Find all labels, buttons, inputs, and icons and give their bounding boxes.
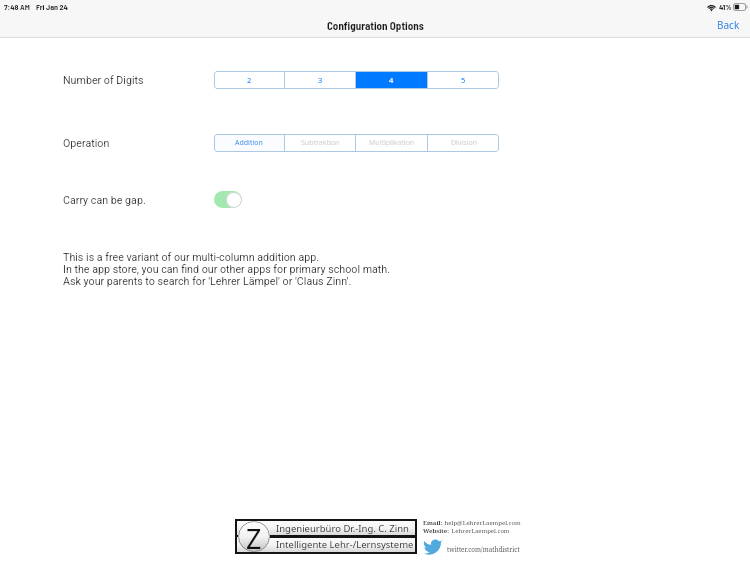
staticText: 2 (247, 75, 252, 85)
staticText: Number of Digits (63, 74, 144, 87)
staticText: Division (451, 138, 477, 148)
staticText: Addition (235, 138, 263, 148)
staticText: Configuration Options (327, 19, 424, 32)
staticText: twitter.com/mathdistrict (447, 545, 520, 554)
staticText: 3 (318, 75, 323, 85)
staticText: Carry can be gap. (63, 194, 146, 207)
staticText: Fri Jan 24 (36, 2, 68, 12)
staticText: 7:48 AM (4, 2, 30, 12)
staticText: Intelligente Lehr-/Lernsysteme (276, 538, 414, 551)
staticText: This is a free variant of our multi-colu… (63, 251, 391, 287)
staticText: Website: (423, 527, 450, 535)
button[interactable]: Back (707, 14, 750, 36)
button[interactable]: 3 (285, 71, 355, 89)
button[interactable]: 4 (356, 71, 427, 89)
staticText: Operation (63, 137, 110, 150)
button[interactable]: Carry can be gap toggle (214, 191, 242, 208)
button[interactable]: Division (428, 134, 499, 152)
staticText: Back (717, 18, 740, 32)
staticText: 5 (461, 75, 466, 85)
button[interactable]: Subtraktion (285, 134, 355, 152)
staticText: Multiplikation (369, 138, 415, 148)
staticText: Z (246, 521, 262, 551)
button[interactable]: 5 (428, 71, 499, 89)
staticText: 4 (389, 75, 394, 85)
button[interactable]: Multiplikation (356, 134, 427, 152)
staticText: LehrerLaempel.com (450, 527, 510, 535)
button[interactable]: 2 (214, 71, 284, 89)
button[interactable]: Addition (214, 134, 284, 152)
staticText: 41% (719, 2, 732, 12)
staticText: Subtraktion (301, 138, 340, 148)
staticText: help@LehrerLaempel.com (443, 519, 521, 527)
staticText: Ingenieurbüro Dr.-Ing. C. Zinn (276, 522, 409, 535)
staticText: Email: (423, 519, 443, 527)
